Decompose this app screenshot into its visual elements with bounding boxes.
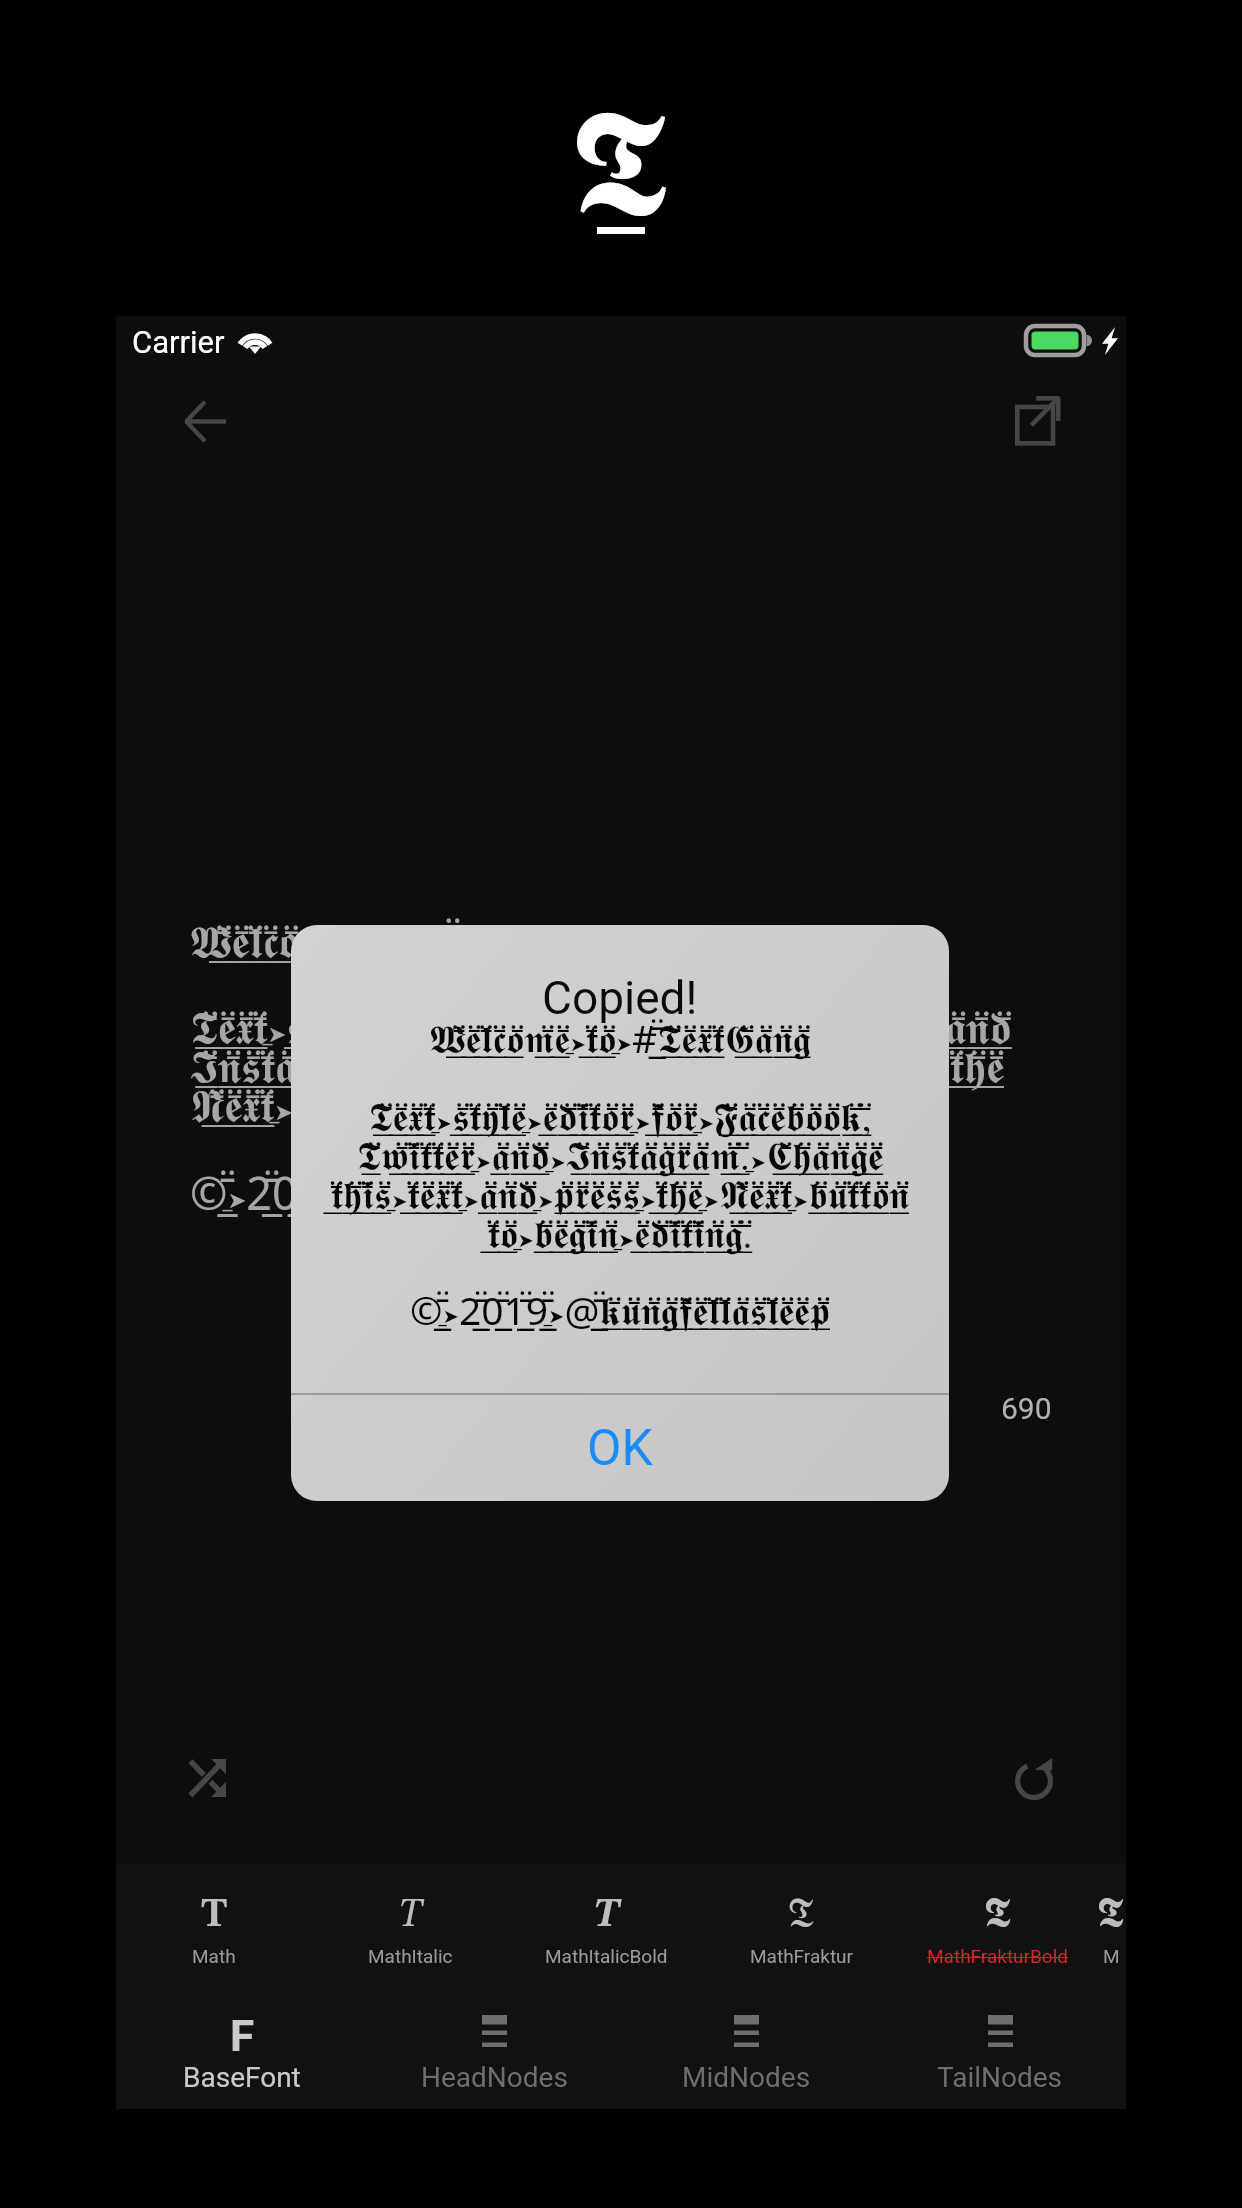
button[interactable]: 𝕿 bbox=[900, 1863, 1096, 1987]
button[interactable]: 𝑇 bbox=[312, 1863, 508, 1987]
staticText: 𝖂̲̄̈𝖊̲̄̈𝖑̲̄̈𝖈̲̄̈𝖔̲̄̈𝖒̲̄̈𝖊̲̲̄̈➤𝖙̲̄̈𝖔̲̲̄̈➤… bbox=[190, 910, 630, 971]
staticText: TailNodes bbox=[937, 2061, 1063, 2094]
staticText: 𝕿 bbox=[984, 1896, 1013, 1936]
staticText: Carrier bbox=[132, 324, 225, 360]
staticText: MathItalicBold bbox=[545, 1945, 668, 1967]
staticText: 690 bbox=[1001, 1391, 1052, 1426]
staticText: Math bbox=[192, 1945, 236, 1967]
button[interactable]: MidNodes bbox=[620, 1987, 873, 2109]
button[interactable]: HeadNodes bbox=[368, 1987, 620, 2109]
staticText: MidNodes bbox=[682, 2061, 811, 2094]
staticText: 𝕿 bbox=[570, 101, 673, 247]
staticText: 𝐓 bbox=[201, 1896, 228, 1936]
staticText: MathFrakturBold bbox=[927, 1945, 1069, 1967]
staticText: ©̲̲̄̈➤2̲̄̈0̲̄̈1̲̄̈9̲̲̄̈➤@̲̄̈𝖐̲̄̈𝖚̲̄̈𝖓̲̄̈… bbox=[190, 1162, 675, 1223]
button[interactable]: 𝔗 bbox=[704, 1863, 900, 1987]
staticText: 𝖙̲̄̈𝖍̲̄̈𝖎̲̄̈𝖘̲̲̄̈➤𝖙̲̄̈𝖊̲̄̈𝖝̲̄̈𝖙̲̲̄̈➤𝖆̲̄̈… bbox=[297, 1178, 943, 1217]
staticText: 𝕿̲̄̈𝖊̲̄̈𝖝̲̄̈𝖙̲̲̄̈➤𝖘̲̄̈𝖙̲̄̈𝖞̲̄̈𝖑̲̄̈𝖊̲̲̄̈➤… bbox=[297, 1100, 943, 1139]
staticText: 𝑇 bbox=[398, 1896, 423, 1936]
staticText: BaseFont bbox=[183, 2061, 301, 2094]
staticText: 𝕹̲̄̈𝖊̲̄̈𝖝̲̄̈𝖙̲̲̄̈➤𝖇̲̄̈𝖚̲̄̈𝖙̲̄̈𝖙̲̄̈𝖔̲̄̈𝖓̄… bbox=[190, 1086, 734, 1131]
staticText: OK bbox=[587, 1419, 653, 1478]
button[interactable]: OK bbox=[291, 1395, 949, 1501]
button[interactable]: Open in app bbox=[1004, 385, 1072, 453]
button[interactable]: Back bbox=[171, 387, 239, 455]
staticText: MathItalic bbox=[368, 1945, 453, 1967]
button[interactable]: Shuffle bbox=[175, 1746, 239, 1810]
staticText: Copied! bbox=[542, 971, 698, 1025]
staticText: 𝖂̲̄̈𝖊̲̄̈𝖑̲̄̈𝖈̲̄̈𝖔̲̄̈𝖒̲̄̈𝖊̲̲̄̈➤𝖙̲̄̈𝖔̲̲̄̈➤… bbox=[297, 1011, 943, 1064]
button[interactable]: Reset bbox=[1002, 1747, 1066, 1811]
staticText: 𝖙̲̄̈𝖔̲̲̄̈➤𝖇̲̄̈𝖊̲̄̈𝖌̲̄̈𝖎̲̄̈𝖓̲̲̄̈➤𝖊̲̄̈𝖉̲̄̈… bbox=[297, 1217, 943, 1256]
staticText: F bbox=[230, 2011, 255, 2051]
staticText: 𝕴̲̄̈𝖓̲̄̈𝖘̲̄̈𝖙̲̄̈𝖆̲̄̈𝖌̲̄̈𝖗̲̄̈𝖆̲̄̈𝖒̲̄̈.̲̄̈… bbox=[190, 1047, 1004, 1092]
staticText: HeadNodes bbox=[421, 2061, 568, 2094]
staticText: M bbox=[1103, 1945, 1120, 1967]
staticText: 𝕿̲̄̈𝖊̲̄̈𝖝̲̄̈𝖙̲̲̄̈➤𝖘̲̄̈𝖙̲̄̈𝖞̲̄̈𝖑̲̄̈𝖊̲̲̄̈➤… bbox=[190, 1008, 1012, 1053]
button[interactable]: 𝐓 bbox=[116, 1863, 312, 1987]
staticText: 𝕿̲̄̈𝖜̲̄̈𝖎̲̄̈𝖙̲̄̈𝖙̲̄̈𝖊̲̄̈𝖗̲̲̄̈➤𝖆̲̄̈𝖓̲̄̈𝖉̄… bbox=[297, 1139, 943, 1178]
staticText: ©̲̲̄̈➤2̲̄̈0̲̄̈1̲̄̈9̲̲̄̈➤@̲̄̈𝖐̲̄̈𝖚̲̄̈𝖓̲̄̈… bbox=[297, 1283, 943, 1336]
staticText: 𝑻 bbox=[593, 1896, 620, 1936]
staticText: MathFraktur bbox=[750, 1945, 854, 1967]
staticText: 𝔗 bbox=[788, 1896, 816, 1936]
button[interactable]: 𝑻 bbox=[508, 1863, 704, 1987]
button[interactable]: TailNodes bbox=[873, 1987, 1126, 2109]
button[interactable]: 𝕿 bbox=[1096, 1863, 1126, 1987]
button[interactable]: F bbox=[116, 1987, 368, 2109]
staticText: 𝕿 bbox=[1097, 1896, 1126, 1936]
